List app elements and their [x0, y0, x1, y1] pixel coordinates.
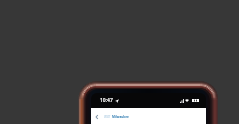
- button[interactable]: Back: [93, 113, 100, 121]
- staticText: Milwaukee: [112, 115, 129, 119]
- button[interactable]: VISIT: [104, 115, 129, 119]
- staticText: 10:47: [100, 97, 113, 104]
- staticText: VISIT: [104, 115, 111, 119]
